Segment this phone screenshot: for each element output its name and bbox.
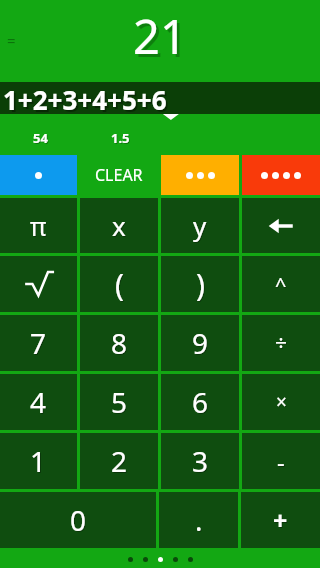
staticText: ^ bbox=[275, 271, 287, 298]
staticText: 8 bbox=[111, 324, 128, 362]
button[interactable]: 0 bbox=[0, 492, 156, 548]
button[interactable]: 3 bbox=[161, 433, 239, 489]
staticText: . bbox=[195, 501, 203, 539]
staticText: π bbox=[30, 209, 47, 243]
staticText: . bbox=[196, 502, 204, 540]
staticText: 2 bbox=[111, 442, 128, 480]
button[interactable]: ( bbox=[80, 256, 158, 312]
staticText: + bbox=[273, 503, 288, 537]
staticText: y bbox=[194, 209, 208, 244]
staticText: 54 bbox=[34, 130, 49, 148]
button[interactable]: 4 bbox=[0, 374, 77, 430]
staticText: 21 bbox=[133, 4, 187, 68]
button[interactable]: x bbox=[80, 198, 158, 253]
staticText: ÷ bbox=[275, 329, 288, 358]
button[interactable]: Divide bbox=[242, 315, 320, 371]
staticText: 7 bbox=[30, 324, 47, 362]
button[interactable]: π bbox=[0, 198, 77, 253]
staticText: 5 bbox=[111, 383, 128, 421]
staticText: × bbox=[277, 390, 288, 416]
staticText: 7 bbox=[31, 325, 48, 363]
staticText: 1 bbox=[31, 443, 48, 481]
staticText: 54 bbox=[33, 129, 48, 147]
staticText: 1.5 bbox=[112, 130, 131, 148]
staticText: 4 bbox=[30, 383, 47, 421]
staticText: 21 bbox=[136, 7, 190, 71]
button[interactable]: 1 bbox=[0, 433, 77, 489]
staticText: 2 bbox=[112, 443, 129, 481]
staticText: 9 bbox=[193, 325, 210, 363]
staticText: ) bbox=[196, 264, 205, 305]
button[interactable]: Backspace bbox=[242, 198, 320, 253]
staticText: 8 bbox=[112, 325, 129, 363]
button[interactable]: Minus bbox=[242, 433, 320, 489]
staticText: π bbox=[31, 210, 48, 244]
staticText: 1+2+3+4+5+6 bbox=[3, 82, 167, 114]
button[interactable]: y bbox=[161, 198, 239, 253]
staticText: ^ bbox=[276, 272, 288, 299]
button[interactable]: 1+2+3+4+5+6 bbox=[0, 82, 320, 114]
staticText: ) bbox=[197, 265, 206, 306]
staticText: ( bbox=[116, 265, 125, 306]
button[interactable]: Plus bbox=[241, 492, 320, 548]
button[interactable]: 1.5 bbox=[80, 120, 160, 155]
button[interactable]: Three decimal places bbox=[161, 155, 239, 195]
staticText: ( bbox=[115, 264, 124, 305]
staticText: x bbox=[112, 208, 126, 243]
staticText: 1 bbox=[30, 442, 47, 480]
staticText: × bbox=[276, 389, 287, 415]
button[interactable]: 6 bbox=[161, 374, 239, 430]
staticText: + bbox=[274, 504, 289, 538]
staticText: 0 bbox=[70, 501, 87, 539]
staticText: y bbox=[193, 208, 207, 243]
staticText: 9 bbox=[192, 324, 209, 362]
button[interactable]: One decimal place bbox=[0, 155, 77, 195]
staticText: 0 bbox=[71, 502, 88, 540]
staticText: = bbox=[7, 30, 16, 50]
button[interactable]: 8 bbox=[80, 315, 158, 371]
staticText: 3 bbox=[192, 442, 209, 480]
staticText: - bbox=[277, 445, 285, 478]
button[interactable]: 5 bbox=[80, 374, 158, 430]
staticText: x bbox=[113, 209, 127, 244]
button[interactable]: 9 bbox=[161, 315, 239, 371]
button[interactable]: Four decimal places bbox=[242, 155, 320, 195]
staticText: 5 bbox=[112, 384, 129, 422]
button[interactable]: Decimal point bbox=[159, 492, 238, 548]
staticText: 1+2+3+4+5+6 bbox=[5, 84, 169, 116]
staticText: 1.5 bbox=[111, 129, 130, 147]
button[interactable]: 7 bbox=[0, 315, 77, 371]
staticText: CLEAR bbox=[95, 164, 143, 186]
staticText: 6 bbox=[192, 383, 209, 421]
staticText: ÷ bbox=[276, 330, 289, 359]
button[interactable]: CLEAR bbox=[80, 155, 158, 195]
button[interactable]: Square root bbox=[0, 256, 77, 312]
button[interactable]: 54 bbox=[0, 120, 80, 155]
staticText: 4 bbox=[31, 384, 48, 422]
button[interactable]: ) bbox=[161, 256, 239, 312]
staticText: 6 bbox=[193, 384, 210, 422]
button[interactable]: Multiply bbox=[242, 374, 320, 430]
staticText: 3 bbox=[193, 443, 210, 481]
button[interactable]: 2 bbox=[80, 433, 158, 489]
staticText: - bbox=[278, 446, 286, 479]
button[interactable]: Power bbox=[242, 256, 320, 312]
